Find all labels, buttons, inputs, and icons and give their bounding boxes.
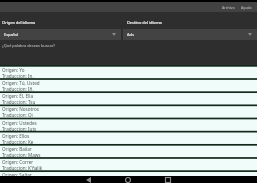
staticText: Origen del idioma [2, 20, 36, 25]
button[interactable]: Origen: Correr [0, 157, 257, 170]
staticText: Origen: Ustedes [2, 120, 37, 126]
button[interactable]: Home [120, 176, 136, 183]
staticText: Destino del idioma [127, 20, 162, 25]
button[interactable]: Origen: Yo [0, 65, 257, 78]
staticText: Traduccion: K'ñalik [2, 165, 43, 170]
button[interactable]: Origen: Saltar [0, 170, 257, 176]
staticText: Traduccion: Ke [2, 139, 34, 144]
staticText: Origen: Yo [2, 67, 25, 73]
staticText: Origen: Bailar [2, 146, 32, 152]
button[interactable]: Español [0, 29, 121, 40]
staticText: Español [4, 32, 19, 37]
button[interactable]: Origen: Ustedes [0, 118, 257, 131]
button[interactable]: Origen: Nosotros [0, 104, 257, 117]
staticText: Ayuda [241, 5, 252, 10]
button[interactable]: Origen: Ellos [0, 131, 257, 144]
staticText: Origen: Ellos [2, 133, 30, 139]
button[interactable]: Origen: Bailar [0, 144, 257, 157]
staticText: Origen: Saltar [2, 172, 32, 176]
button[interactable]: Origen: Él, Ella [0, 91, 257, 104]
staticText: Traduccion: Iuts [2, 126, 37, 131]
button[interactable]: Ayuda [238, 3, 255, 12]
button[interactable]: Back [80, 176, 96, 183]
staticText: Traduccion: Maws [2, 152, 41, 157]
button[interactable]: Origen: Tú, Usted [0, 78, 257, 91]
staticText: Origen: Él, Ella [2, 93, 34, 99]
button[interactable]: ¿Qué palabra deseas buscar? [2, 43, 55, 48]
staticText: Origen: Tú, Usted [2, 80, 40, 86]
staticText: Origen: Correr [2, 159, 34, 165]
staticText: Acls [127, 32, 135, 37]
button[interactable]: Archivo [219, 3, 238, 12]
button[interactable]: Acls [123, 29, 257, 40]
staticText: Traduccion: Tsu [2, 99, 36, 104]
staticText: Archivo [222, 5, 235, 10]
staticText: Traduccion: In. [2, 73, 34, 78]
staticText: Traduccion: Oi [2, 112, 33, 117]
staticText: Traduccion: Iñ. [2, 86, 34, 91]
staticText: Origen: Nosotros [2, 106, 40, 112]
button[interactable]: Recents [160, 176, 176, 183]
